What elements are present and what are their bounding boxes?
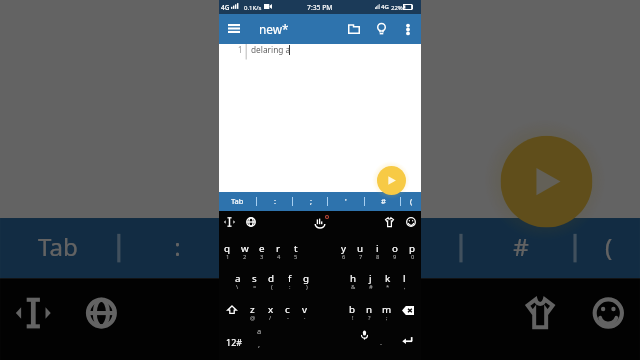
button[interactable]: t (287, 235, 304, 265)
button[interactable]: Shift (222, 300, 242, 320)
staticText: : (289, 283, 291, 291)
button[interactable]: Run (501, 136, 592, 227)
button[interactable]: u (352, 235, 369, 265)
button[interactable]: Emoji (583, 288, 630, 335)
button[interactable]: Open file (342, 17, 366, 41)
button[interactable]: Hints (369, 17, 393, 41)
staticText: z (250, 303, 255, 316)
button[interactable]: Change language (76, 288, 124, 335)
button[interactable]: p (404, 235, 421, 265)
button[interactable]: a (252, 324, 266, 338)
button[interactable]: Gesture typing (312, 215, 327, 230)
button[interactable]: Emoji (403, 214, 418, 229)
staticText: s (252, 272, 257, 285)
staticText: 1 (226, 253, 230, 261)
button[interactable]: x (262, 296, 279, 326)
button[interactable]: Theme (516, 288, 564, 335)
staticText: j (369, 272, 372, 285)
staticText: = (253, 283, 257, 291)
button[interactable]: a (229, 265, 246, 295)
staticText: x (268, 303, 274, 316)
button[interactable]: : (257, 192, 293, 211)
button[interactable]: r (270, 235, 287, 265)
staticText: t (294, 242, 298, 255)
button[interactable]: Run (377, 166, 406, 195)
button[interactable]: v (296, 296, 313, 326)
button[interactable]: s (246, 265, 263, 295)
button[interactable]: 12# (221, 335, 247, 349)
button[interactable]: Voice input (356, 327, 372, 343)
button[interactable]: Backspace (398, 300, 418, 320)
button[interactable]: Tab (219, 192, 256, 211)
staticText: - (287, 314, 289, 322)
button[interactable]: : (120, 218, 234, 278)
button[interactable]: Gesture typing (295, 291, 342, 338)
staticText: a (257, 326, 262, 336)
staticText: / (269, 314, 272, 322)
button[interactable]: y (335, 235, 352, 265)
button[interactable]: j (362, 265, 379, 295)
button[interactable]: ' (328, 192, 364, 211)
button[interactable]: Tab (0, 218, 117, 278)
button[interactable]: l (396, 265, 413, 295)
button[interactable]: f (281, 265, 298, 295)
button[interactable]: q (219, 235, 236, 265)
staticText: h (350, 272, 357, 285)
button[interactable]: c (279, 296, 296, 326)
button[interactable]: ( (577, 218, 640, 278)
button[interactable]: Enter (396, 329, 418, 351)
button[interactable]: · (374, 337, 388, 351)
staticText: e (259, 242, 265, 255)
staticText: u (357, 242, 364, 255)
button[interactable]: e (253, 235, 270, 265)
button[interactable]: More options (397, 18, 419, 40)
button[interactable]: g (298, 265, 315, 295)
staticText: a (235, 272, 241, 285)
button[interactable]: Space (270, 327, 388, 357)
button[interactable]: m (378, 296, 395, 326)
button[interactable]: n (361, 296, 378, 326)
button[interactable]: Cursor control (9, 288, 57, 335)
staticText: 0.1K/s (244, 4, 262, 12)
staticText: & (351, 283, 356, 291)
button[interactable]: Change language (243, 214, 258, 229)
button[interactable]: ; (293, 192, 329, 211)
staticText: : (174, 231, 184, 262)
button[interactable]: ; (234, 218, 348, 278)
button[interactable]: Cursor control (222, 214, 237, 229)
button[interactable]: b (344, 296, 361, 326)
staticText: 12# (226, 336, 243, 348)
button[interactable]: k (379, 265, 396, 295)
button[interactable]: o (386, 235, 403, 265)
staticText: * (386, 283, 390, 291)
staticText: m (382, 303, 392, 316)
button[interactable]: ' (345, 218, 459, 278)
staticText: d (268, 272, 275, 285)
button[interactable]: d (263, 265, 280, 295)
button[interactable]: Theme (382, 214, 397, 229)
button[interactable]: Menu (222, 16, 246, 40)
button[interactable]: w (236, 235, 253, 265)
staticText: 5 (294, 253, 298, 261)
button[interactable]: h (345, 265, 362, 295)
button[interactable]: ( (401, 192, 422, 211)
button[interactable]: z (244, 296, 261, 326)
button[interactable]: i (369, 235, 386, 265)
button[interactable]: # (365, 192, 401, 211)
staticText: 9 (393, 253, 397, 261)
staticText: Tab (231, 196, 244, 206)
button[interactable]: # (463, 218, 577, 278)
button[interactable]: , (252, 337, 266, 351)
staticText: 0 (411, 253, 415, 261)
